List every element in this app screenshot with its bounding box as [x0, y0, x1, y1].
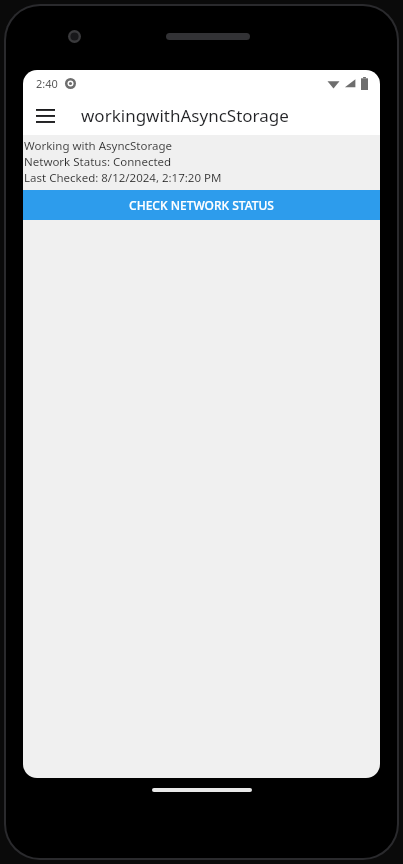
staticText: workingwithAsyncStorage — [81, 104, 289, 127]
button[interactable]: Open navigation menu — [23, 96, 67, 135]
staticText: CHECK NETWORK STATUS — [129, 197, 274, 213]
staticText: Last Checked: 8/12/2024, 2:17:20 PM — [24, 170, 222, 186]
button[interactable]: CHECK NETWORK STATUS — [23, 190, 380, 220]
staticText: Working with AsyncStorage — [24, 138, 173, 154]
staticText: Network Status: Connected — [24, 154, 172, 170]
staticText: 2:40 — [36, 76, 58, 91]
